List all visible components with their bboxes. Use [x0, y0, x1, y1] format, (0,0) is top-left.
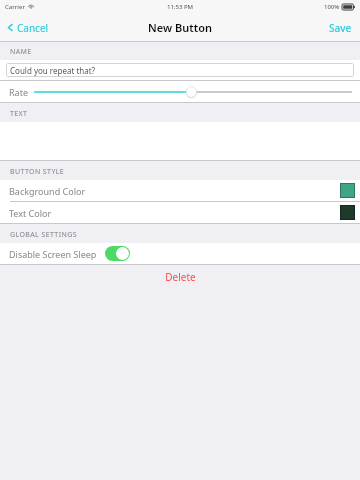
other: Rate slider [34, 85, 352, 99]
button[interactable]: Rate [0, 81, 360, 102]
staticText: Rate [9, 86, 28, 98]
staticText: Could you repeat that? [10, 65, 96, 76]
staticText: Cancel [17, 21, 49, 35]
staticText: Text Color [9, 207, 52, 219]
staticText: NAME [10, 47, 32, 57]
button[interactable]: Cancel [0, 14, 55, 41]
staticText: 11:53 PM [167, 3, 194, 11]
staticText: Delete [165, 270, 196, 284]
button[interactable]: Disable Screen Sleep toggle [105, 246, 130, 261]
staticText: BUTTON STYLE [10, 167, 65, 177]
button[interactable]: Disable Screen Sleep [0, 243, 360, 264]
staticText: Carrier [5, 3, 25, 11]
staticText: TEXT [10, 109, 28, 119]
staticText: Background Color [9, 185, 86, 197]
staticText: Disable Screen Sleep [9, 248, 97, 260]
staticText: GLOBAL SETTINGS [10, 230, 77, 240]
button[interactable]: Delete [0, 265, 360, 289]
button[interactable]: Text Color [0, 202, 360, 223]
button[interactable]: Save [321, 14, 360, 41]
button[interactable]: Could you repeat that? [0, 60, 360, 80]
staticText: Save [329, 21, 352, 35]
button[interactable]: Background Color [0, 180, 360, 201]
staticText: New Button [148, 20, 212, 35]
staticText: 100% [324, 3, 340, 11]
